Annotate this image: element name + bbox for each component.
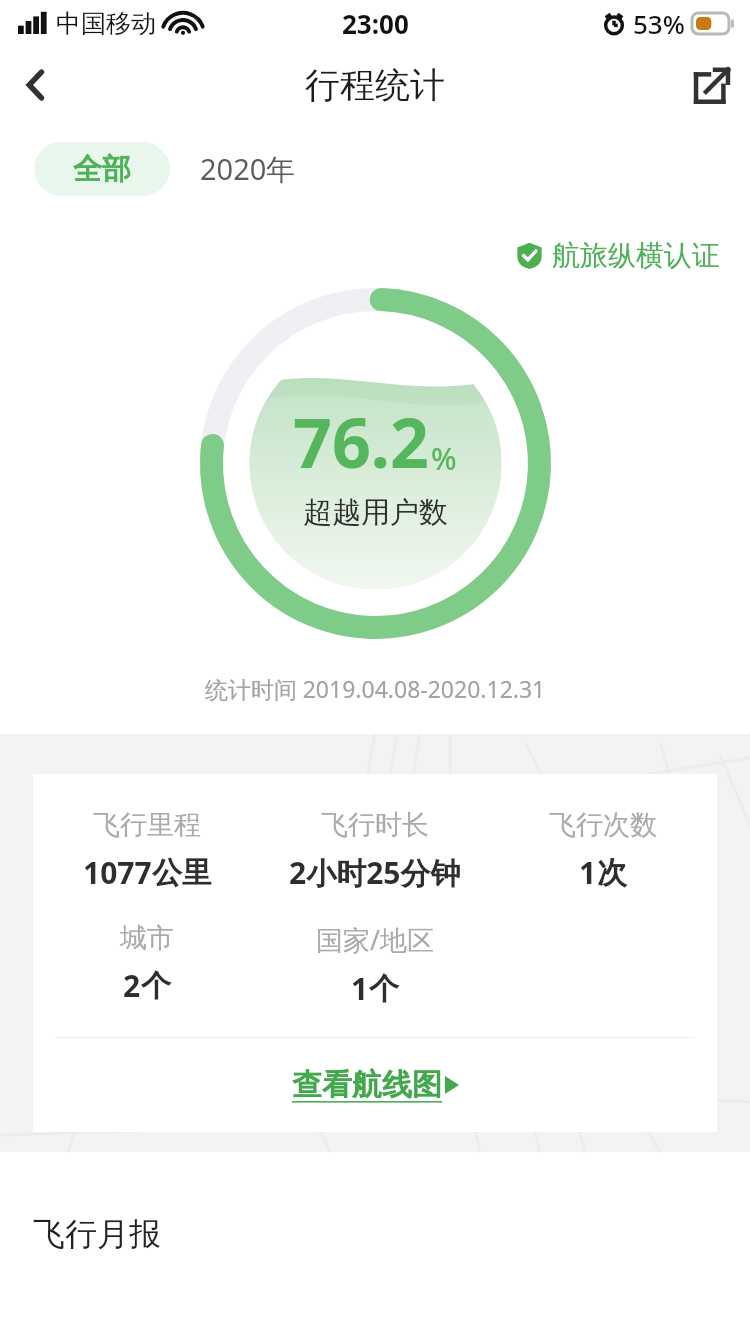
staticText: 个 (369, 970, 399, 1008)
button[interactable]: 全部 (34, 142, 170, 196)
button[interactable]: 2020年 (200, 142, 296, 196)
staticText: 个 (141, 967, 171, 1005)
staticText: 1 (579, 852, 597, 893)
staticText: 1077 (83, 852, 152, 893)
staticText: 飞行时长 (321, 808, 429, 842)
staticText: 城市 (120, 921, 174, 955)
staticText: 2小时25分钟 (289, 852, 461, 893)
staticText: 公里 (152, 854, 212, 892)
staticText: 飞行次数 (549, 808, 657, 842)
staticText: 飞行月报 (33, 1214, 161, 1254)
staticText: 2020年 (200, 149, 296, 189)
staticText: 23:00 (342, 6, 409, 41)
staticText: 次 (597, 854, 627, 892)
staticText: 全部 (73, 151, 131, 188)
staticText: 中国移动 (56, 8, 156, 39)
staticText: 国家/地区 (316, 921, 435, 958)
staticText: 行程统计 (305, 63, 445, 107)
staticText: 76.2 (293, 395, 429, 488)
staticText: 2 (123, 965, 141, 1006)
button[interactable]: Back (0, 49, 72, 121)
button[interactable]: 查看航线图 (33, 1038, 717, 1132)
staticText: 飞行里程 (93, 808, 201, 842)
staticText: % (431, 438, 457, 479)
staticText: 超越用户数 (303, 494, 448, 531)
staticText: 航旅纵横认证 (552, 238, 720, 273)
staticText: 53% (633, 6, 685, 41)
staticText: 查看航线图 (292, 1066, 442, 1104)
staticText: 1 (351, 968, 369, 1009)
staticText: 统计时间 2019.04.08-2020.12.31 (0, 673, 750, 704)
button[interactable]: Share (674, 47, 750, 123)
